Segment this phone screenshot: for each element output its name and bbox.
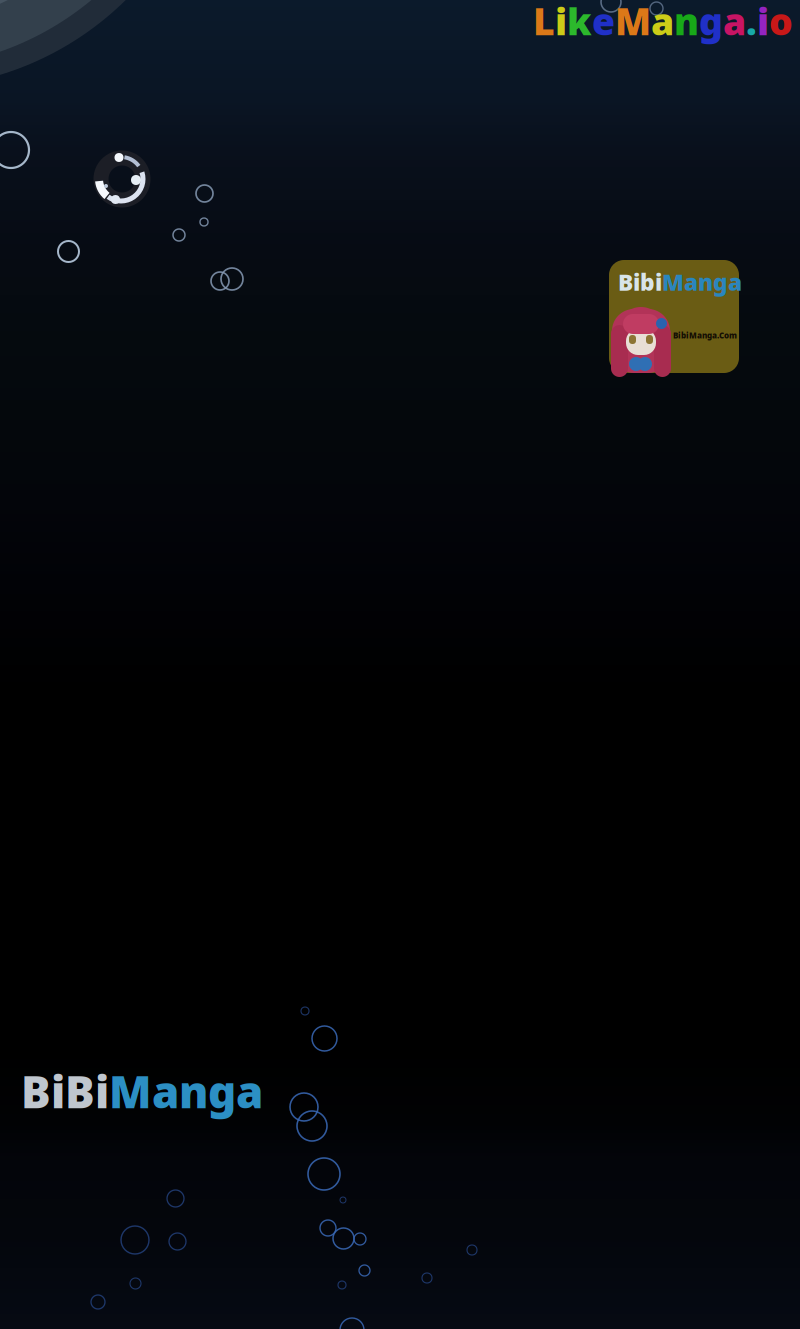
staticText: g: [699, 0, 723, 46]
staticText: a: [651, 0, 674, 46]
staticText: .: [746, 0, 757, 46]
button[interactable]: BibiManga: [609, 260, 739, 373]
staticText: BibiManga.Com: [673, 330, 737, 341]
staticText: Manga: [109, 1062, 263, 1120]
staticText: Manga: [662, 267, 742, 297]
staticText: k: [567, 0, 592, 46]
staticText: n: [674, 0, 699, 46]
staticText: i: [757, 0, 769, 46]
staticText: Bibi: [618, 267, 662, 297]
staticText: i: [555, 0, 567, 46]
staticText: BiBi: [21, 1062, 109, 1120]
staticText: L: [533, 0, 555, 46]
staticText: e: [592, 0, 615, 46]
staticText: o: [769, 0, 793, 46]
staticText: M: [615, 0, 651, 46]
staticText: a: [723, 0, 746, 46]
